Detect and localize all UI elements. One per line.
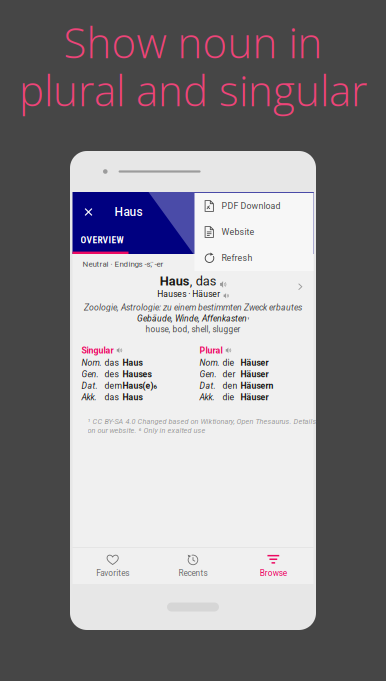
button[interactable]: Favorites <box>72 548 153 584</box>
staticText: Akk. <box>199 392 214 402</box>
staticText: Plural <box>199 345 222 356</box>
staticText: Häuser <box>240 392 268 402</box>
staticText: plural and singular <box>19 61 367 119</box>
button[interactable]: Close <box>72 198 100 226</box>
staticText: Gebäude, Winde, Affenkasten¹ <box>137 313 249 323</box>
staticText: house, bod, shell, slugger <box>145 325 240 334</box>
staticText: Zoologie, Astrologie: zu einem bestimmte… <box>84 302 302 313</box>
staticText: Häusern <box>240 381 273 391</box>
staticText: ¹ CC BY-SA 4.0 Changed based on Wiktiona… <box>87 417 316 426</box>
staticText: Gen. <box>81 369 98 379</box>
staticText: Recents <box>178 568 207 578</box>
staticText: Nom. <box>81 358 101 368</box>
staticText: die <box>222 392 234 402</box>
staticText: OVERVIEW <box>80 234 123 246</box>
staticText: Haus, das <box>160 274 217 288</box>
staticText: das <box>104 392 118 402</box>
staticText: Neutral · Endings -s, ̈-er <box>82 259 163 269</box>
staticText: Hauses <box>122 369 151 379</box>
staticText: das <box>104 358 118 368</box>
staticText: der <box>222 369 235 379</box>
staticText: Hauses · Häuser <box>157 289 220 299</box>
staticText: Favorites <box>96 568 129 578</box>
button[interactable]: OVERVIEW <box>72 228 313 252</box>
staticText: Häuser <box>240 369 268 379</box>
staticText: Show noun in <box>63 13 322 71</box>
staticText: dem <box>104 381 122 391</box>
staticText: PDF Download <box>221 201 280 211</box>
staticText: des <box>104 369 118 379</box>
button[interactable]: PDF Download <box>194 193 313 219</box>
staticText: Häuser <box>240 358 268 368</box>
staticText: Dat. <box>199 381 215 391</box>
staticText: on our website. ⁶ Only in exalted use <box>87 426 205 435</box>
staticText: Dat. <box>81 381 97 391</box>
staticText: Nom. <box>199 358 219 368</box>
staticText: Website <box>221 227 254 237</box>
staticText: Singular <box>81 345 113 356</box>
staticText: Haus <box>122 358 142 368</box>
staticText: den <box>222 381 237 391</box>
staticText: Refresh <box>221 253 252 263</box>
staticText: Gen. <box>199 369 216 379</box>
button[interactable]: Recents <box>153 548 233 584</box>
staticText: Haus <box>122 392 142 402</box>
button[interactable]: Refresh <box>194 245 313 271</box>
staticText: Haus(e)6 <box>122 381 157 391</box>
staticText: Haus <box>114 205 142 219</box>
button[interactable]: Website <box>194 219 313 245</box>
button[interactable]: Browse <box>233 548 313 584</box>
staticText: Browse <box>260 568 287 578</box>
staticText: Akk. <box>81 392 96 402</box>
staticText: die <box>222 358 234 368</box>
